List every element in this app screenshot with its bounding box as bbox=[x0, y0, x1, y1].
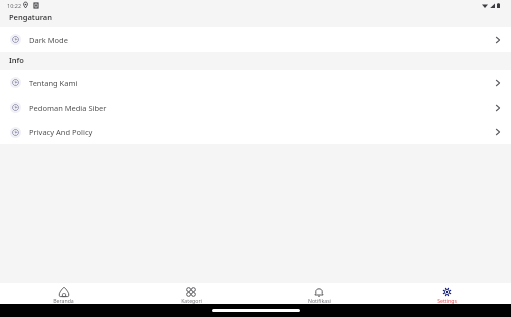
staticText: Notifikasi bbox=[308, 297, 331, 304]
button[interactable]: Settings bbox=[383, 283, 511, 304]
staticText: Pedoman Media Siber bbox=[29, 103, 107, 113]
button[interactable]: Beranda bbox=[0, 283, 127, 304]
other: Kategori bbox=[186, 287, 196, 297]
staticText: Tentang Kami bbox=[29, 78, 78, 88]
button[interactable]: Kategori bbox=[127, 283, 255, 304]
button[interactable]: Pedoman Media Siber bbox=[0, 95, 511, 120]
staticText: Info bbox=[9, 55, 24, 65]
button[interactable]: Privacy And Policy bbox=[0, 120, 511, 144]
other: Settings bbox=[442, 287, 452, 297]
button[interactable]: Dark Mode bbox=[0, 27, 511, 52]
other: Beranda bbox=[59, 287, 69, 297]
staticText: Dark Mode bbox=[29, 35, 68, 45]
staticText: Kategori bbox=[181, 297, 202, 304]
button[interactable]: Tentang Kami bbox=[0, 70, 511, 95]
staticText: Beranda bbox=[53, 297, 74, 304]
other: Notifikasi bbox=[314, 287, 324, 297]
staticText: Privacy And Policy bbox=[29, 127, 93, 137]
button[interactable]: Notifikasi bbox=[255, 283, 383, 304]
staticText: 10:22 bbox=[7, 2, 22, 9]
staticText: Pengaturan bbox=[9, 12, 52, 22]
staticText: Settings bbox=[437, 297, 457, 304]
